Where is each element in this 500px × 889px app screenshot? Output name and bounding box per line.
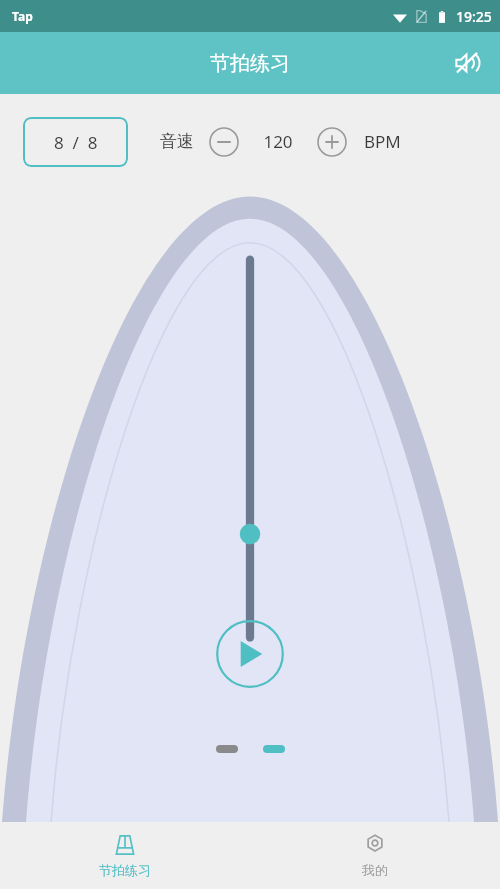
staticText: 19:25 xyxy=(456,7,492,26)
staticText: 120 xyxy=(263,130,293,153)
staticText: 我的 xyxy=(362,862,388,878)
staticText: 节拍练习 xyxy=(210,51,290,76)
staticText: Tap xyxy=(12,8,33,24)
button[interactable]: 节拍练习 xyxy=(0,822,250,889)
button[interactable]: Play xyxy=(215,619,285,689)
button[interactable]: Mute xyxy=(444,40,490,86)
staticText: 音速 xyxy=(160,131,194,152)
staticText: BPM xyxy=(364,130,401,153)
button[interactable]: Decrease tempo xyxy=(208,126,240,158)
staticText: 8 / 8 xyxy=(54,131,98,154)
staticText: 节拍练习 xyxy=(99,862,151,878)
button[interactable]: 8 / 8 xyxy=(23,117,128,167)
button[interactable]: 我的 xyxy=(250,822,500,889)
button[interactable]: Increase tempo xyxy=(316,126,348,158)
